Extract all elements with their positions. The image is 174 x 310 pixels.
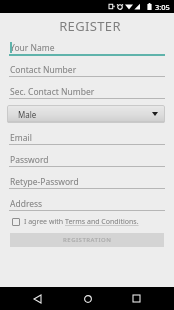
button[interactable]: Male	[7, 105, 165, 123]
staticText: 3:05	[155, 2, 170, 12]
staticText: Password	[10, 154, 49, 166]
button[interactable]: Address	[0, 190, 174, 212]
button[interactable]: Email	[0, 124, 174, 146]
button[interactable]: Sec. Contact Number	[0, 78, 174, 100]
button[interactable]: Retype-Password	[0, 168, 174, 190]
button[interactable]: Your Name	[0, 34, 174, 56]
button[interactable]: Home	[76, 287, 99, 310]
button[interactable]: Recents	[125, 287, 148, 310]
staticText: Terms and Conditions.	[65, 217, 139, 227]
button[interactable]: Password	[0, 146, 174, 168]
button[interactable]: REGISTRATION	[10, 233, 164, 247]
button[interactable]: Back	[26, 287, 49, 310]
staticText: Male	[18, 109, 37, 120]
staticText: Sec. Contact Number	[10, 86, 95, 98]
button[interactable]: I agree with	[12, 216, 139, 227]
staticText: REGISTRATION	[63, 236, 112, 244]
staticText: REGISTER	[3, 17, 174, 35]
staticText: I agree with	[24, 217, 65, 227]
button[interactable]: Contact Number	[0, 56, 174, 78]
staticText: Retype-Password	[10, 176, 79, 188]
staticText: Email	[10, 132, 32, 144]
staticText: Contact Number	[10, 64, 77, 76]
staticText: Your Name	[10, 42, 55, 54]
staticText: Address	[10, 198, 43, 210]
